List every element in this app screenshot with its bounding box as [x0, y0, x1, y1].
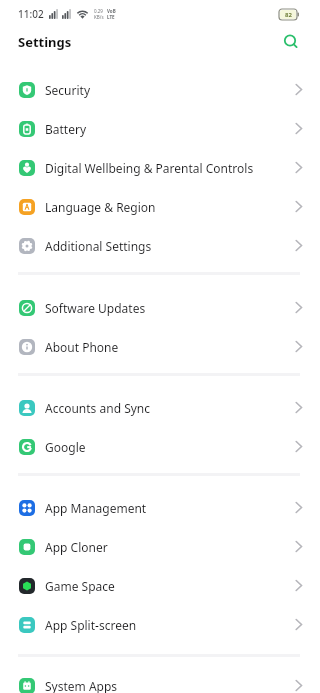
button[interactable]: App Split-screen [0, 605, 320, 644]
staticText: Settings [18, 33, 72, 51]
staticText: Digital Wellbeing & Parental Controls [45, 160, 254, 176]
button[interactable] [280, 31, 302, 53]
button[interactable]: Security [0, 70, 320, 109]
staticText: App Cloner [45, 539, 108, 555]
staticText: App Split-screen [45, 617, 137, 633]
staticText: 0.29 [94, 8, 103, 14]
staticText: Accounts and Sync [45, 400, 151, 416]
staticText: Language & Region [45, 199, 156, 215]
button[interactable]: Accounts and Sync [0, 388, 320, 427]
staticText: Google [45, 439, 86, 455]
button[interactable]: Google [0, 427, 320, 466]
button[interactable]: Game Space [0, 566, 320, 605]
button[interactable]: Additional Settings [0, 226, 320, 265]
button[interactable]: Digital Wellbeing & Parental Controls [0, 148, 320, 187]
button[interactable]: App Management [0, 488, 320, 527]
staticText: 82 [285, 11, 292, 19]
button[interactable]: Software Updates [0, 288, 320, 327]
button[interactable]: Language & Region [0, 187, 320, 226]
staticText: Game Space [45, 578, 115, 594]
button[interactable]: System Apps [0, 666, 320, 693]
staticText: Additional Settings [45, 238, 152, 254]
staticText: LTE [107, 14, 115, 20]
staticText: VoB [107, 8, 116, 14]
button[interactable]: Battery [0, 109, 320, 148]
staticText: App Management [45, 500, 147, 516]
button[interactable]: App Cloner [0, 527, 320, 566]
staticText: 11:02 [18, 7, 44, 21]
staticText: Software Updates [45, 300, 146, 316]
staticText: Security [45, 82, 91, 98]
button[interactable]: About Phone [0, 327, 320, 366]
staticText: About Phone [45, 339, 119, 355]
staticText: Battery [45, 121, 87, 137]
staticText: KB/s [94, 14, 104, 20]
staticText: System Apps [45, 678, 118, 693]
